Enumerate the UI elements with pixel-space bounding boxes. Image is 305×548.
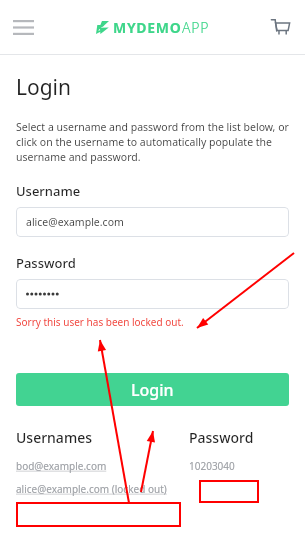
staticText: Password <box>189 428 254 447</box>
staticText: alice@example.com (locked out) <box>16 482 167 496</box>
button[interactable]: Login <box>16 373 289 406</box>
button[interactable]: Open navigation menu <box>8 12 38 42</box>
staticText: Login <box>131 379 174 401</box>
button[interactable]: alice@example.com (locked out) <box>16 482 167 496</box>
staticText: Password <box>16 254 76 272</box>
staticText: Username <box>16 182 81 200</box>
staticText: Select a username and password from the … <box>16 120 289 164</box>
button[interactable] <box>16 279 289 309</box>
staticText: alice@example.com <box>26 215 124 229</box>
staticText: 10203040 <box>189 459 235 473</box>
staticText: MYDEMO <box>113 18 182 37</box>
staticText: Login <box>16 73 72 102</box>
staticText: Usernames <box>16 428 92 447</box>
button[interactable]: bod@example.com <box>16 459 107 473</box>
staticText: bod@example.com <box>16 459 107 473</box>
staticText: Sorry this user has been locked out. <box>16 315 184 329</box>
staticText: APP <box>182 18 210 37</box>
button[interactable]: Shopping cart <box>265 12 295 42</box>
button[interactable]: alice@example.com <box>16 207 289 237</box>
